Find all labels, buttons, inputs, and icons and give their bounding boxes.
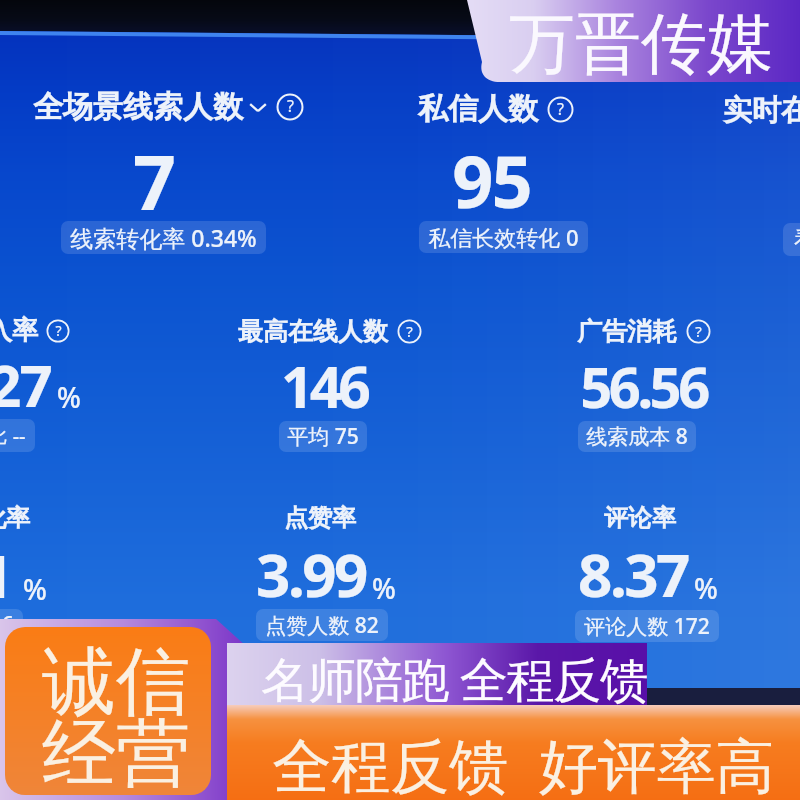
staticText: 56.56 — [580, 348, 707, 424]
button[interactable]: 线索转化率 0.34% — [70, 221, 257, 254]
button[interactable]: 全程反馈 好评率高 — [227, 705, 800, 800]
staticText: 评论人数 172 — [584, 612, 710, 641]
staticText: % — [694, 569, 718, 607]
staticText: 全程反馈 好评率高 — [272, 724, 775, 800]
staticText: 转化率 — [0, 503, 30, 533]
button[interactable]: 人数 6 — [0, 609, 14, 640]
staticText: 环比 -- — [0, 422, 26, 449]
button[interactable]: 私信长效转化 0 — [428, 221, 579, 253]
staticText: 诚信 经营 — [42, 636, 190, 795]
staticText: 平均 75 — [287, 422, 359, 451]
button[interactable]: 环比 -- — [0, 419, 26, 452]
staticText: ? — [557, 98, 564, 120]
staticText: 点赞人数 82 — [265, 611, 379, 640]
button[interactable]: 评论人数 172 — [584, 610, 710, 642]
button[interactable]: 名师陪跑 全程反馈 — [227, 643, 647, 713]
staticText: 线索成本 8 — [586, 422, 688, 451]
staticText: 评论率 — [604, 503, 676, 533]
staticText: 27 — [0, 345, 51, 424]
staticText: 实时在 — [723, 92, 800, 129]
button[interactable]: 平均 75 — [287, 421, 359, 452]
staticText: 广告消耗 — [577, 316, 677, 347]
staticText: ? — [287, 95, 294, 117]
staticText: 95 — [452, 131, 531, 229]
staticText: % — [57, 378, 81, 416]
staticText: 1 — [0, 534, 14, 616]
staticText: 线索转化率 0.34% — [70, 222, 257, 253]
button[interactable]: 线索成本 8 — [586, 421, 688, 452]
staticText: % — [372, 569, 396, 607]
staticText: ? — [55, 321, 62, 340]
button[interactable]: 看板 — [794, 223, 800, 256]
staticText: 146 — [281, 347, 367, 425]
staticText: 看板 — [794, 226, 800, 254]
staticText: 全场景线索人数 — [33, 88, 243, 126]
staticText: % — [23, 570, 47, 608]
staticText: 名师陪跑 全程反馈 — [261, 646, 647, 712]
button[interactable]: 诚信经营 — [5, 627, 211, 795]
button[interactable]: 点赞人数 82 — [265, 609, 379, 641]
staticText: ? — [406, 321, 413, 341]
staticText: 人数 6 — [0, 610, 14, 639]
staticText: 私信人数 — [418, 90, 538, 128]
staticText: ? — [695, 321, 702, 341]
staticText: 3.99 — [256, 533, 366, 615]
staticText: 7 — [133, 130, 176, 232]
button[interactable]: 万晋传媒 logo watermark — [0, 0, 800, 800]
staticText: 万晋传媒 — [509, 2, 773, 85]
staticText: 私信长效转化 0 — [428, 222, 579, 252]
staticText: 进入率 — [0, 314, 38, 347]
staticText: 最高在线人数 — [238, 316, 388, 347]
staticText: 点赞率 — [284, 503, 356, 533]
staticText: 8.37 — [578, 533, 688, 615]
